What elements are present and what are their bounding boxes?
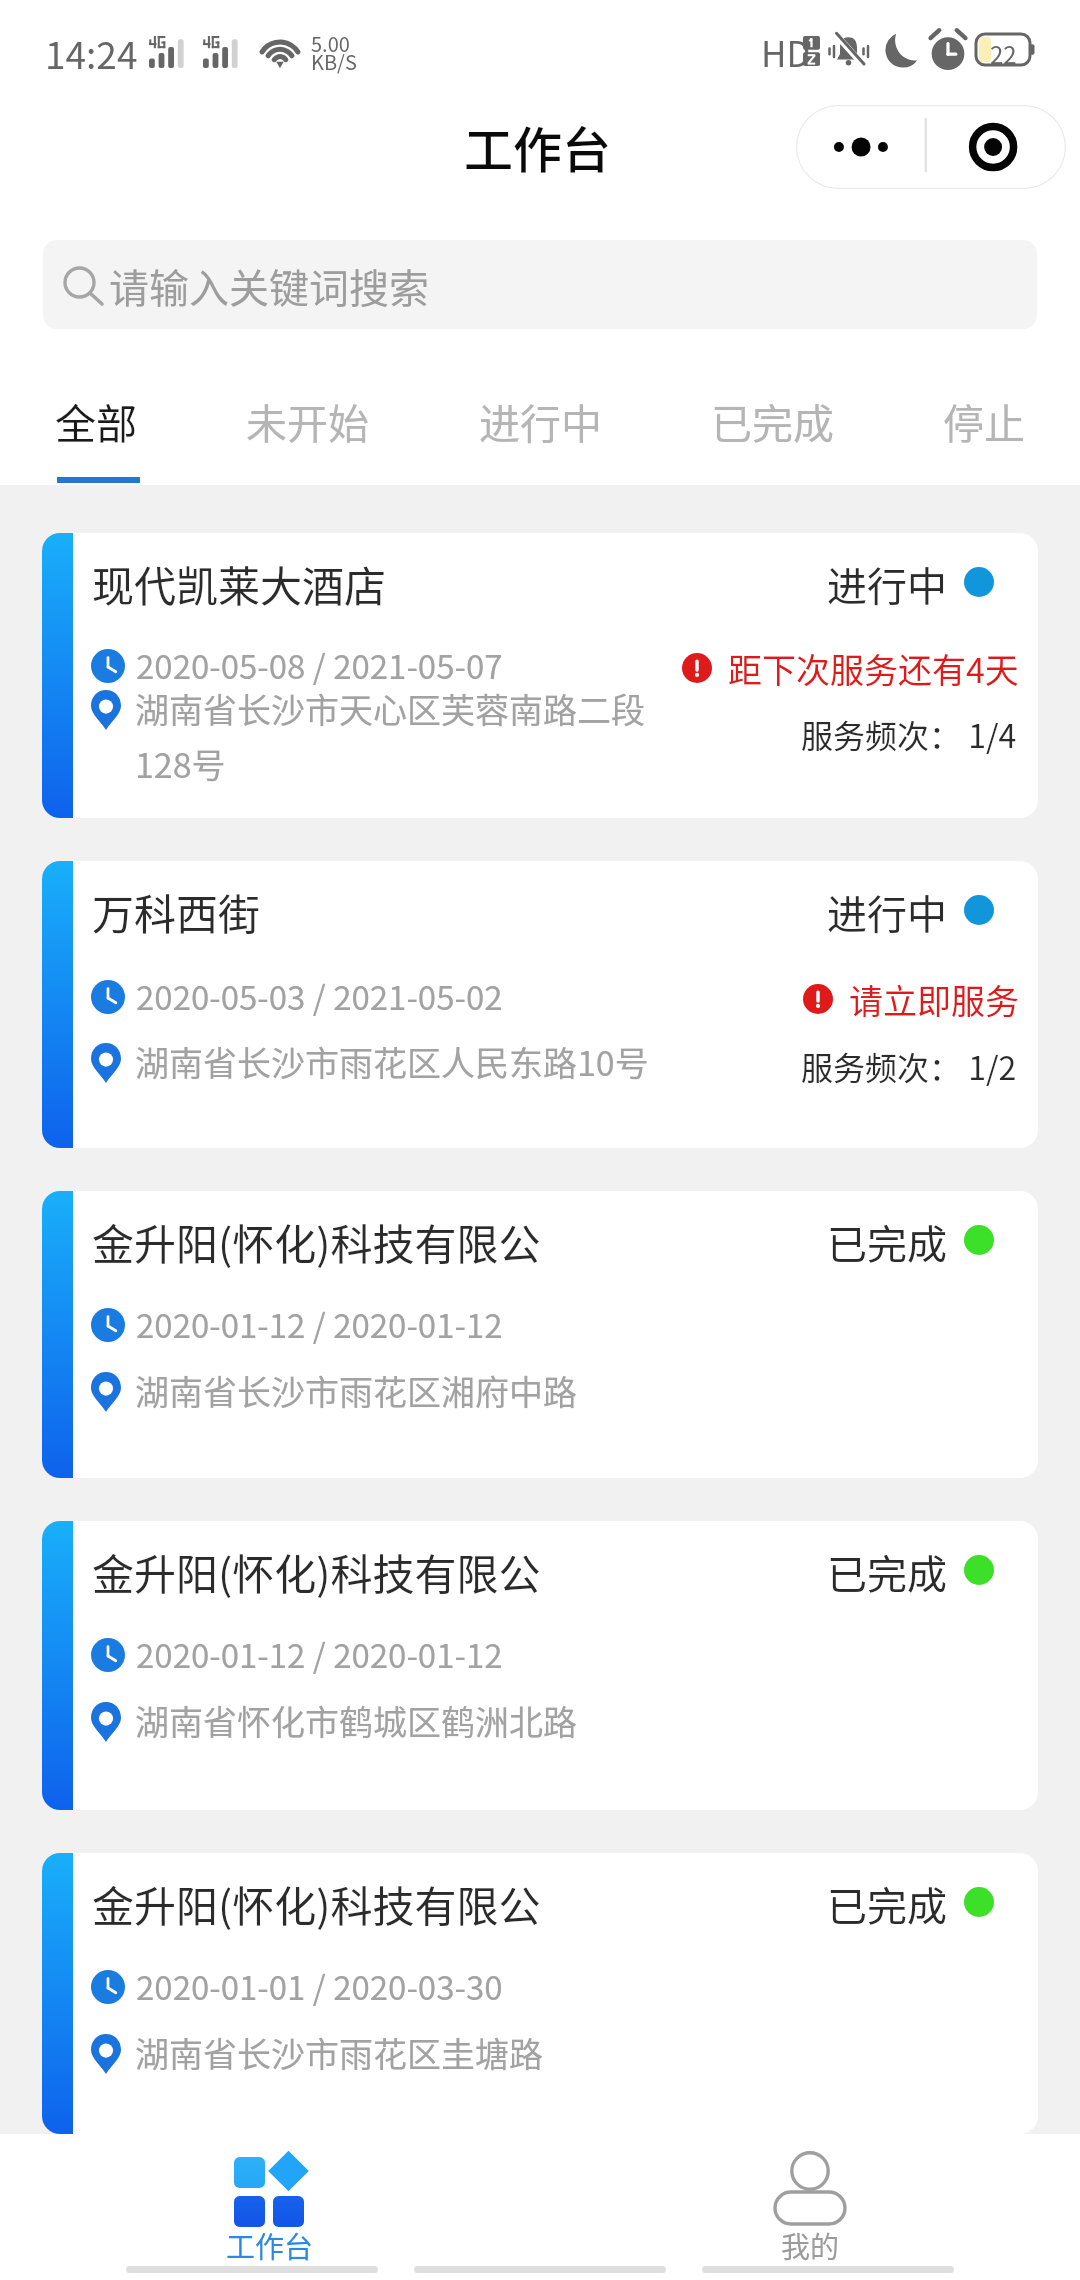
button[interactable]: 停止 [943,350,1025,485]
button[interactable]: 金升阳(怀化)科技有限公 [42,1853,1038,2134]
staticText: 停止 [943,391,1025,450]
button[interactable]: 工作台 [0,2134,540,2280]
button[interactable]: 现代凯莱大酒店 [42,533,1038,818]
button[interactable]: 未开始 [246,350,369,485]
staticText: 已完成 [827,1543,947,1601]
staticText: 服务频次： 1/2 [801,1043,1017,1089]
staticText: 金升阳(怀化)科技有限公 [92,1873,541,1934]
staticText: 我的 [781,2224,840,2266]
staticText: 进行中 [827,883,947,941]
staticText: HD [761,26,811,77]
button[interactable]: 请输入关键词搜索 [43,240,1037,329]
staticText: 5.00 KB/S [311,29,357,76]
staticText: 已完成 [827,1213,947,1271]
staticText: 2020-05-08 / 2021-05-07 [136,641,503,689]
staticText: 距下次服务还有4天 [728,644,1019,693]
staticText: 全部 [55,391,137,450]
staticText: 湖南省长沙市雨花区圭塘路 [135,2028,543,2077]
button[interactable]: 金升阳(怀化)科技有限公 [42,1521,1038,1810]
staticText: 现代凯莱大酒店 [92,553,387,614]
staticText: 金升阳(怀化)科技有限公 [92,1211,541,1272]
staticText: 湖南省长沙市雨花区人民东路10号 [135,1037,649,1086]
staticText: 金升阳(怀化)科技有限公 [92,1541,541,1602]
button[interactable]: 我的 [540,2134,1080,2280]
staticText: 2020-01-12 / 2020-01-12 [136,1630,503,1678]
staticText: 2020-05-03 / 2021-05-02 [136,972,503,1020]
staticText: 服务频次： 1/4 [801,711,1017,757]
staticText: 14:24 [45,26,138,80]
staticText: 湖南省长沙市雨花区湘府中路 [135,1366,577,1415]
staticText: 进行中 [827,555,947,613]
staticText: 已完成 [711,391,834,450]
staticText: 进行中 [479,391,602,450]
button[interactable]: More options and close [796,105,1066,189]
staticText: 工作台 [226,2224,314,2266]
staticText: 22 [990,36,1017,71]
staticText: 2020-01-12 / 2020-01-12 [136,1300,503,1348]
staticText: 工作台 [464,111,612,182]
staticText: 未开始 [246,391,369,450]
staticText: 湖南省怀化市鹤城区鹤洲北路 [135,1696,577,1745]
staticText: 请输入关键词搜索 [109,257,429,315]
staticText: 2020-01-01 / 2020-03-30 [136,1962,503,2010]
staticText: 请立即服务 [849,975,1019,1024]
button[interactable]: 进行中 [479,350,602,485]
button[interactable]: 全部 [55,350,137,485]
staticText: 万科西街 [92,881,261,942]
staticText: 已完成 [827,1875,947,1933]
button[interactable]: 已完成 [711,350,834,485]
staticText: 湖南省长沙市天心区芙蓉南路二段 128号 [135,684,645,788]
button[interactable]: 万科西街 [42,861,1038,1148]
button[interactable]: 金升阳(怀化)科技有限公 [42,1191,1038,1478]
